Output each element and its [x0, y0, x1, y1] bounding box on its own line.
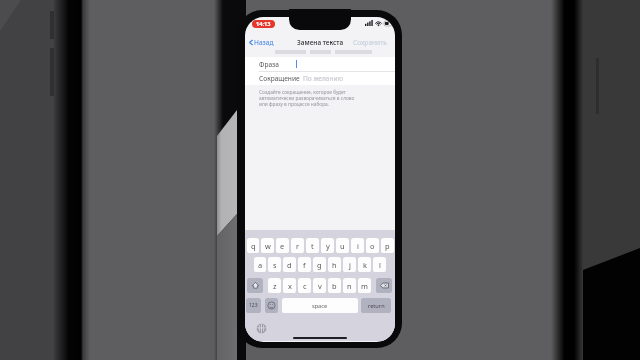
staticText: По желанию: [303, 74, 343, 83]
button[interactable]: Сохранить: [353, 38, 387, 47]
button[interactable]: r: [291, 238, 304, 253]
button[interactable]: c: [298, 278, 311, 293]
staticText: i: [357, 241, 359, 251]
staticText: n: [347, 281, 352, 291]
staticText: b: [332, 281, 337, 291]
staticText: u: [340, 241, 345, 251]
button[interactable]: Change keyboard: [256, 323, 267, 334]
staticText: Замена текста: [297, 38, 344, 47]
staticText: t: [311, 241, 314, 251]
staticText: c: [303, 281, 307, 291]
button[interactable]: space: [282, 298, 358, 313]
button[interactable]: v: [313, 278, 326, 293]
button[interactable]: w: [261, 238, 274, 253]
button[interactable]: Фраза: [259, 57, 395, 71]
staticText: x: [288, 281, 292, 291]
staticText: h: [332, 260, 337, 270]
staticText: j: [349, 260, 351, 270]
button[interactable]: d: [283, 257, 296, 272]
staticText: q: [251, 241, 256, 251]
staticText: r: [296, 241, 300, 251]
button[interactable]: z: [268, 278, 281, 293]
staticText: 123: [249, 302, 258, 309]
staticText: a: [258, 260, 263, 270]
staticText: 14:13: [256, 20, 271, 28]
staticText: Сокращение: [259, 74, 300, 83]
button[interactable]: i: [351, 238, 364, 253]
staticText: e: [280, 241, 285, 251]
staticText: w: [265, 241, 271, 251]
button[interactable]: x: [283, 278, 296, 293]
button[interactable]: n: [343, 278, 356, 293]
staticText: g: [317, 260, 322, 270]
button[interactable]: h: [328, 257, 341, 272]
staticText: y: [326, 241, 330, 251]
staticText: return: [368, 302, 385, 310]
staticText: o: [370, 241, 375, 251]
staticText: Назад: [254, 38, 274, 47]
button[interactable]: 123: [246, 298, 261, 313]
button[interactable]: Назад: [249, 38, 274, 47]
button[interactable]: e: [276, 238, 289, 253]
staticText: p: [385, 241, 390, 251]
button[interactable]: f: [298, 257, 311, 272]
button[interactable]: s: [268, 257, 281, 272]
staticText: m: [361, 281, 368, 291]
button[interactable]: g: [313, 257, 326, 272]
staticText: space: [312, 302, 328, 310]
staticText: d: [287, 260, 292, 270]
button[interactable]: return: [361, 298, 391, 313]
staticText: z: [273, 281, 277, 291]
button[interactable]: j: [343, 257, 356, 272]
button[interactable]: Backspace: [376, 278, 392, 293]
button[interactable]: a: [254, 257, 266, 272]
staticText: Фраза: [259, 60, 279, 69]
button[interactable]: p: [381, 238, 394, 253]
staticText: s: [273, 260, 277, 270]
staticText: f: [303, 260, 306, 270]
button[interactable]: l: [373, 257, 386, 272]
button[interactable]: o: [366, 238, 379, 253]
button[interactable]: k: [358, 257, 371, 272]
button[interactable]: m: [358, 278, 371, 293]
button[interactable]: u: [336, 238, 349, 253]
staticText: Создайте сокращение, которое будет автом…: [259, 89, 357, 107]
staticText: k: [363, 260, 367, 270]
button[interactable]: y: [321, 238, 334, 253]
button[interactable]: Emoji: [265, 298, 278, 313]
staticText: v: [318, 281, 322, 291]
button[interactable]: q: [247, 238, 259, 253]
button[interactable]: Сокращение: [259, 71, 395, 85]
button[interactable]: t: [306, 238, 319, 253]
button[interactable]: b: [328, 278, 341, 293]
button[interactable]: Shift: [247, 278, 263, 293]
staticText: l: [379, 260, 381, 270]
